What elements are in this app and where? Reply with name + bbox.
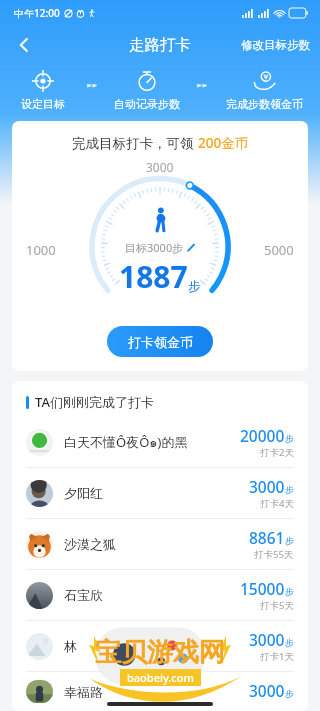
button[interactable]: 编辑目标 [186, 243, 196, 253]
staticText: 1000 [26, 241, 56, 259]
staticText: 完成步数领金币 [226, 97, 303, 111]
staticText: 打卡55天 [254, 548, 294, 561]
staticText: 自动记录步数 [114, 97, 180, 111]
button[interactable]: 幸福路 [12, 672, 308, 711]
staticText: 设定目标 [21, 97, 65, 111]
staticText: 5000 [264, 241, 294, 259]
staticText: baobeiy.com [127, 670, 194, 685]
button[interactable]: 林 [12, 621, 308, 671]
button[interactable]: 白天不懂Ô夜Ô๑)的黑 [12, 417, 308, 467]
staticText: 打卡1天 [260, 650, 294, 663]
staticText: 目标3000步 [125, 240, 184, 255]
staticText: TA们刚刚完成了打卡 [35, 393, 154, 411]
staticText: 3000 [146, 159, 174, 175]
staticText: 幸福路 [64, 684, 249, 700]
staticText: 夕阳红 [64, 485, 249, 501]
staticText: 中午12:00 [14, 6, 60, 20]
staticText: 步 [285, 688, 294, 699]
staticText: 完成目标打卡，可领 [72, 134, 198, 152]
staticText: 步 [285, 484, 294, 495]
staticText: 步 [285, 433, 294, 444]
staticText: 3000 [249, 680, 285, 701]
button[interactable]: 返回 [6, 27, 42, 63]
staticText: 宝贝游戏网 [95, 636, 225, 669]
staticText: 8861 [249, 527, 285, 548]
staticText: 200金币 [198, 134, 249, 152]
staticText: 步 [285, 535, 294, 546]
button[interactable]: 修改目标步数 [231, 32, 320, 58]
staticText: 1887 [119, 256, 188, 297]
staticText: 打卡5天 [260, 599, 294, 612]
staticText: 打卡4天 [260, 497, 294, 510]
staticText: 步 [285, 637, 294, 648]
staticText: 15000 [240, 578, 285, 599]
staticText: 步 [285, 586, 294, 597]
staticText: 打卡领金币 [128, 334, 193, 350]
staticText: 修改目标步数 [241, 38, 310, 52]
staticText: 走路打卡 [129, 35, 191, 55]
staticText: 打卡2天 [260, 446, 294, 459]
staticText: 步 [188, 278, 201, 294]
button[interactable]: 夕阳红 [12, 468, 308, 518]
staticText: 白天不懂Ô夜Ô๑)的黑 [64, 432, 240, 453]
staticText: 3000 [249, 629, 285, 650]
staticText: 20000 [240, 425, 285, 446]
staticText: 3000 [249, 476, 285, 497]
button[interactable]: 打卡领金币 [107, 326, 213, 357]
button[interactable]: 沙漠之狐 [12, 519, 308, 569]
button[interactable]: 石宝欣 [12, 570, 308, 620]
staticText: 沙漠之狐 [64, 536, 249, 552]
staticText: 林 [64, 638, 249, 654]
staticText: 石宝欣 [64, 587, 240, 603]
